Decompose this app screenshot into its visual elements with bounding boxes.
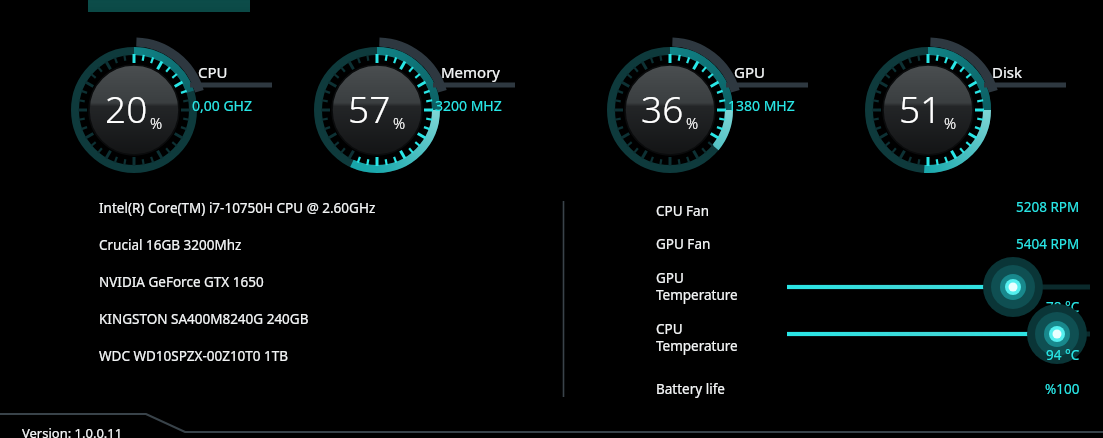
button[interactable]: System monitor dashboard xyxy=(0,0,1103,438)
